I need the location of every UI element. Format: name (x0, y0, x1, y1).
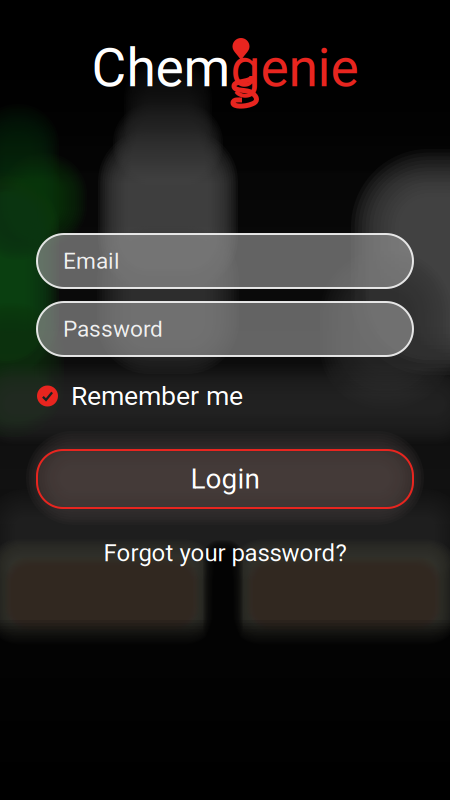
button[interactable]: Password (37, 302, 413, 356)
button[interactable]: Remember me (37, 382, 413, 410)
button[interactable]: Email (37, 234, 413, 288)
staticText: Password (63, 316, 163, 342)
button[interactable]: Login (37, 450, 413, 508)
staticText: genie (230, 37, 358, 99)
staticText: Email (63, 248, 120, 274)
staticText: Remember me (71, 380, 243, 412)
staticText: Forgot your password? (103, 539, 346, 567)
button[interactable]: Forgot your password? (103, 539, 346, 567)
staticText: Login (190, 463, 259, 495)
staticText: Chem (91, 37, 230, 99)
